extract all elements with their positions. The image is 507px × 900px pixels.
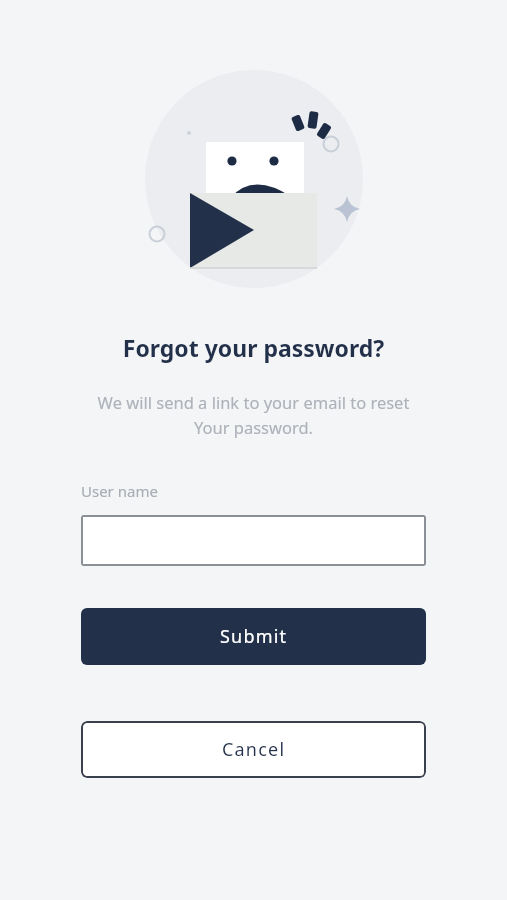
staticText: Cancel	[222, 737, 286, 762]
button[interactable]	[81, 515, 426, 566]
staticText: Forgot your password?	[0, 332, 507, 363]
staticText: User name	[81, 481, 158, 501]
button[interactable]: Cancel	[81, 721, 426, 778]
staticText: We will send a link to your email to res…	[30, 391, 477, 439]
button[interactable]: Submit	[81, 608, 426, 665]
staticText: Submit	[220, 624, 288, 649]
